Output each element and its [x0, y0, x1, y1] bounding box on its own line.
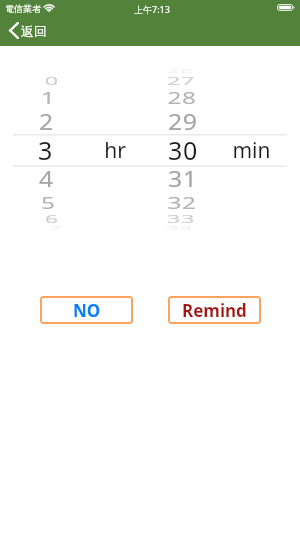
- button[interactable]: Minutes wheel, 30 min: [150, 62, 300, 237]
- staticText: 6: [45, 212, 59, 226]
- staticText: 上午7:13: [134, 3, 170, 15]
- staticText: Remind: [182, 299, 247, 322]
- staticText: 30: [168, 133, 198, 167]
- button[interactable]: Remind: [168, 296, 261, 324]
- staticText: 5: [41, 190, 56, 213]
- button[interactable]: Hours wheel, 3 hr: [0, 62, 150, 237]
- staticText: 電信業者: [5, 3, 41, 14]
- staticText: 29: [168, 106, 198, 136]
- staticText: 33: [167, 212, 195, 226]
- staticText: 34: [166, 225, 193, 231]
- staticText: 2: [39, 106, 54, 136]
- staticText: 1: [41, 85, 56, 108]
- staticText: 32: [167, 190, 197, 213]
- staticText: min: [232, 136, 271, 165]
- button[interactable]: NO: [40, 296, 133, 324]
- staticText: 26: [166, 68, 193, 74]
- staticText: 返回: [21, 23, 47, 39]
- staticText: 31: [168, 163, 198, 193]
- staticText: hr: [104, 136, 126, 165]
- other: Battery full: [277, 4, 295, 11]
- staticText: 0: [45, 74, 59, 88]
- button[interactable]: 返回: [0, 20, 59, 46]
- staticText: 7: [49, 225, 63, 231]
- staticText: NO: [73, 299, 101, 322]
- other: Wi-Fi signal: [44, 4, 54, 12]
- staticText: 3: [38, 133, 53, 167]
- staticText: 4: [39, 163, 54, 193]
- staticText: 28: [167, 85, 197, 108]
- staticText: 27: [167, 74, 195, 88]
